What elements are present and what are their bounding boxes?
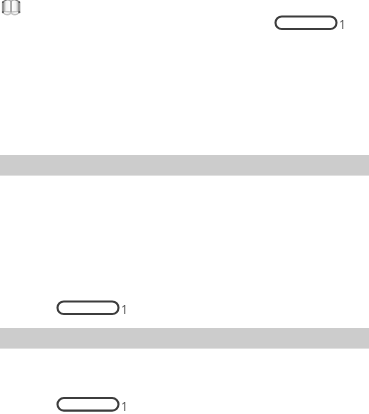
staticText: 1 bbox=[121, 398, 128, 414]
button[interactable]: Open book bbox=[0, 0, 22, 17]
button[interactable]: Text field bbox=[274, 15, 337, 30]
staticText: 1 bbox=[339, 16, 346, 32]
button[interactable]: Section divider bbox=[0, 328, 369, 349]
button[interactable]: Section divider bbox=[0, 155, 369, 176]
button[interactable]: Text field bbox=[56, 397, 119, 412]
staticText: 1 bbox=[121, 301, 128, 317]
button[interactable]: Text field bbox=[56, 300, 119, 315]
